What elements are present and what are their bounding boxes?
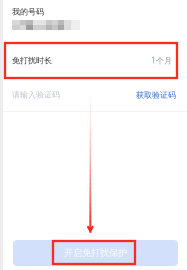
staticText: 开启免打扰保护 <box>64 247 127 259</box>
staticText: 请输入验证码 <box>12 90 60 100</box>
button[interactable]: 免打扰时长 <box>0 42 187 79</box>
staticText: 1个月 <box>151 55 172 66</box>
staticText: 免打扰时长 <box>12 56 52 65</box>
button[interactable]: 获取验证码 <box>134 89 178 101</box>
staticText: 获取验证码 <box>136 90 176 100</box>
staticText: 我的号码 <box>12 7 44 17</box>
button[interactable]: 开启免打扰保护 <box>13 240 178 266</box>
